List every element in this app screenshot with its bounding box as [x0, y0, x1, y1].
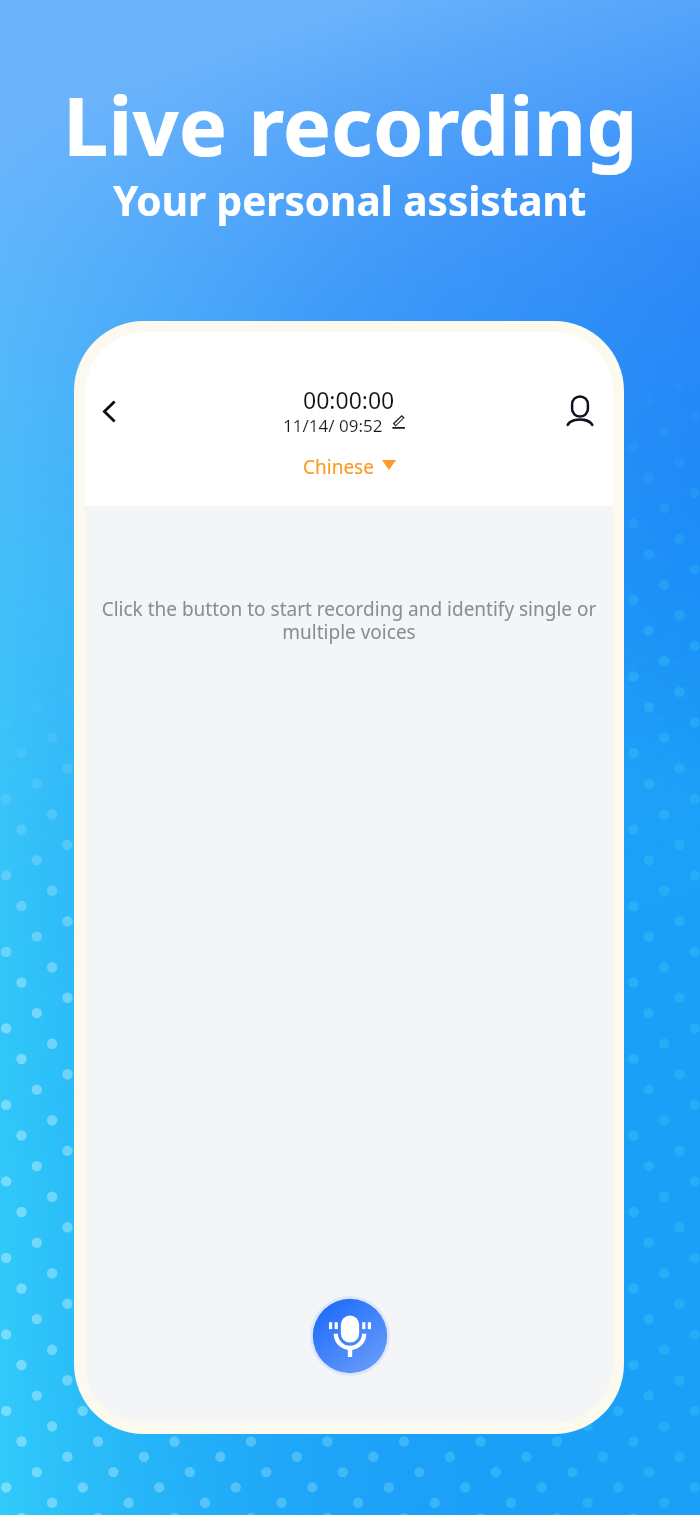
staticText: 11/14/ 09:52 — [283, 414, 383, 437]
button[interactable]: Edit title — [390, 415, 411, 436]
staticText: Click the button to start recording and … — [97, 596, 601, 645]
button[interactable]: Start recording — [310, 1296, 390, 1376]
staticText: Live recording — [63, 69, 638, 179]
staticText: Chinese — [303, 454, 374, 480]
button[interactable]: Account — [556, 387, 604, 435]
staticText: Your personal assistant — [113, 173, 587, 228]
staticText: 00:00:00 — [303, 384, 395, 415]
button[interactable]: Back — [86, 388, 133, 435]
button[interactable]: Chinese — [85, 454, 613, 480]
